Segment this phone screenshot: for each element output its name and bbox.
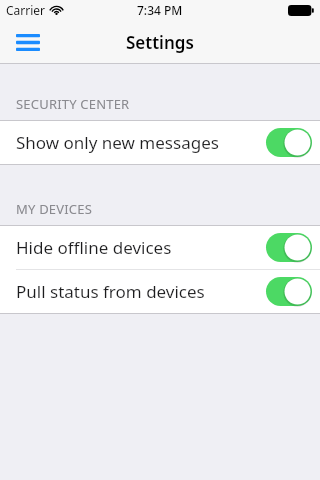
button[interactable]: Show only new messages <box>0 121 320 164</box>
staticText: Settings <box>126 31 194 54</box>
button[interactable]: Hide offline devices <box>0 226 320 269</box>
button[interactable]: Menu <box>8 22 48 62</box>
staticText: Carrier <box>6 2 46 18</box>
staticText: SECURITY CENTER <box>16 95 130 113</box>
staticText: 7:34 PM <box>137 2 183 18</box>
staticText: MY DEVICES <box>16 200 93 218</box>
button[interactable]: Toggle <box>266 277 312 306</box>
button[interactable]: Toggle <box>266 128 312 157</box>
staticText: Pull status from devices <box>16 280 205 303</box>
button[interactable]: Toggle <box>266 233 312 262</box>
staticText: Show only new messages <box>16 131 219 154</box>
button[interactable]: Pull status from devices <box>0 270 320 313</box>
staticText: Hide offline devices <box>16 236 172 259</box>
